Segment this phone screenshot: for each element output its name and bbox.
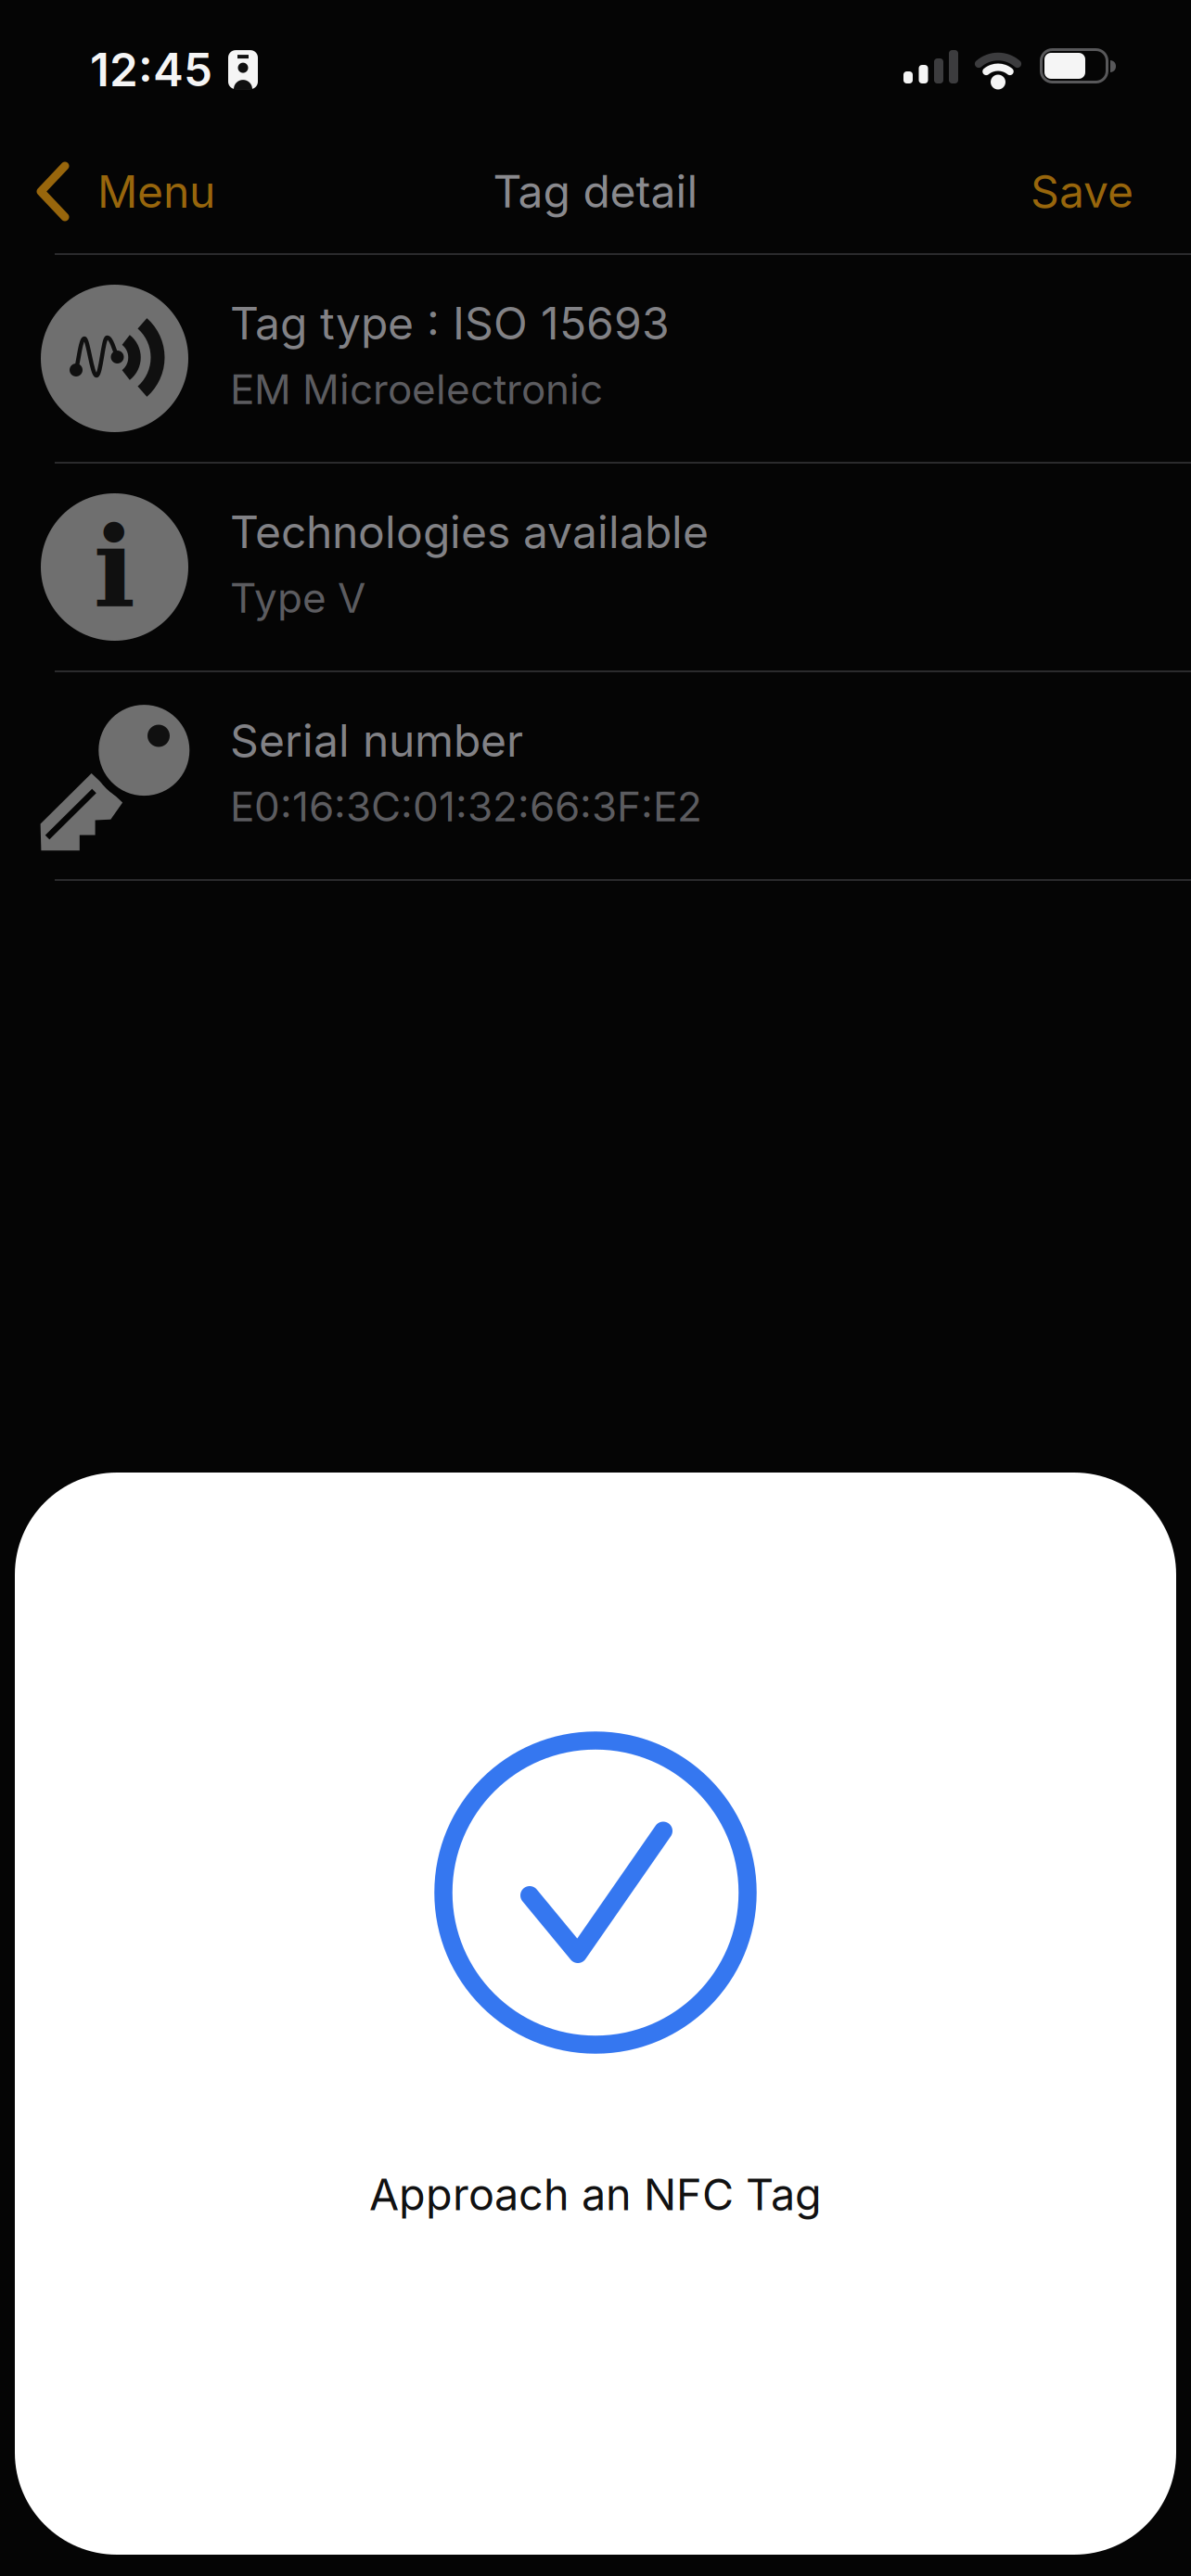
staticText: 12:45 <box>90 43 212 97</box>
button[interactable]: i <box>0 464 1191 670</box>
staticText: Save <box>1031 165 1133 218</box>
button[interactable]: Menu <box>0 162 215 221</box>
staticText: Menu <box>97 165 215 218</box>
staticText: Type V <box>230 574 365 622</box>
staticText: Tag detail <box>493 165 698 218</box>
staticText: Technologies available <box>230 506 709 558</box>
staticText: Approach an NFC Tag <box>369 2169 822 2220</box>
staticText: E0:16:3C:01:32:66:3F:E2 <box>230 783 702 831</box>
staticText: EM Microelectronic <box>230 365 603 413</box>
button[interactable]: Serial number <box>0 672 1191 879</box>
button[interactable]: Save <box>1031 165 1133 218</box>
button[interactable]: Tag type : ISO 15693 <box>0 255 1191 462</box>
staticText: Serial number <box>230 714 523 767</box>
staticText: Tag type : ISO 15693 <box>230 297 670 349</box>
staticText: i <box>93 502 136 632</box>
